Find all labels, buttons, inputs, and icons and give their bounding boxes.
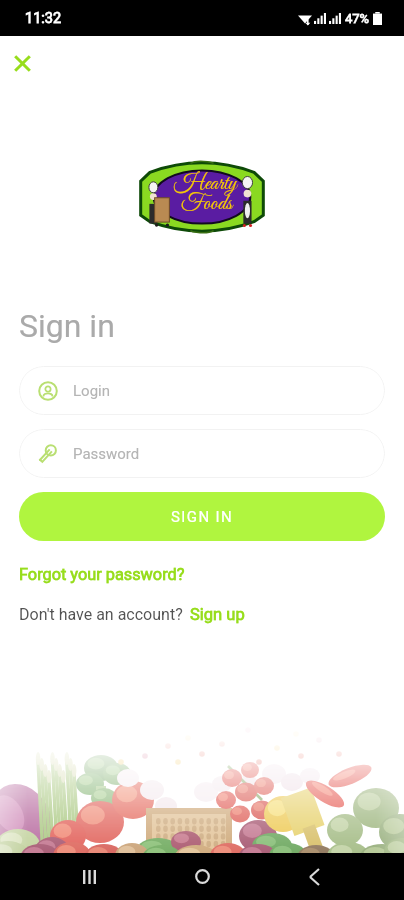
staticText: Login: [73, 382, 110, 400]
button[interactable]: Login: [19, 366, 385, 415]
staticText: Password: [73, 445, 140, 463]
button[interactable]: Home: [178, 853, 226, 900]
staticText: Foods: [181, 190, 233, 218]
staticText: Don't have an account?: [19, 605, 183, 624]
staticText: 47%: [345, 11, 370, 26]
button[interactable]: Close: [5, 46, 39, 80]
button[interactable]: Back: [290, 853, 338, 900]
button[interactable]: Sign up: [190, 605, 245, 624]
button[interactable]: SIGN IN: [19, 492, 385, 541]
button[interactable]: Recent apps: [65, 853, 113, 900]
staticText: Hearty: [174, 170, 237, 198]
button[interactable]: Password: [19, 429, 385, 478]
staticText: 11:32: [25, 10, 62, 27]
staticText: SIGN IN: [171, 508, 234, 526]
staticText: Sign in: [19, 307, 115, 345]
button[interactable]: Forgot your password?: [19, 565, 185, 584]
